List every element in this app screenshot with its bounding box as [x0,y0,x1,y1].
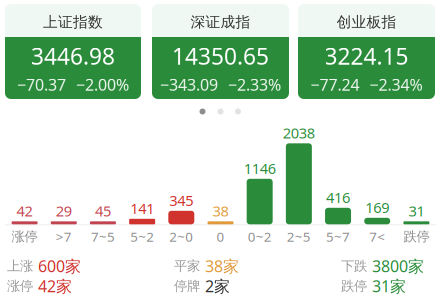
staticText: 2~0 [169,228,193,245]
staticText: 3446.98 [31,41,115,71]
staticText: 600家 [38,255,81,277]
staticText: 平家 [174,258,200,274]
staticText: 29 [56,201,72,221]
button[interactable]: 创业板指 [298,4,435,99]
staticText: −2.34% [369,74,422,95]
staticText: 38 [212,201,228,221]
staticText: 2038 [283,123,315,143]
staticText: −343.09 [160,74,218,95]
staticText: 跌停 [403,228,429,245]
staticText: 涨停 [7,278,33,294]
staticText: 深证成指 [190,13,250,31]
staticText: 创业板指 [336,13,396,31]
staticText: −77.24 [310,74,359,95]
staticText: >7 [56,228,72,245]
staticText: 38家 [205,255,239,277]
staticText: −2.00% [76,74,129,95]
staticText: 涨停 [12,228,38,245]
staticText: 45 [95,201,111,221]
staticText: 停牌 [174,278,200,294]
staticText: 2~5 [287,228,311,245]
staticText: 0~2 [248,228,272,245]
staticText: 5~2 [130,228,154,245]
staticText: 31 [408,201,424,221]
staticText: 42 [17,201,33,221]
staticText: 7< [369,228,385,245]
staticText: 7~5 [91,228,115,245]
staticText: 169 [365,198,389,217]
staticText: −2.33% [228,74,281,95]
button[interactable]: 上证指数 [5,4,141,99]
staticText: 下跌 [341,258,367,274]
staticText: 上证指数 [43,13,103,31]
staticText: 345 [169,191,193,210]
staticText: 31家 [372,275,406,297]
staticText: 3224.15 [324,41,408,71]
staticText: 5~7 [326,228,350,245]
staticText: 416 [326,188,350,207]
staticText: 3800家 [372,255,424,277]
staticText: 14350.65 [172,41,269,71]
button[interactable]: 深证成指 [152,4,289,99]
staticText: 0 [216,228,224,245]
staticText: 1146 [244,159,276,178]
staticText: 上涨 [7,258,33,274]
staticText: 141 [130,199,154,218]
staticText: 42家 [38,275,72,297]
staticText: 2家 [205,275,230,297]
staticText: 跌停 [341,278,367,294]
staticText: −70.37 [17,74,66,95]
